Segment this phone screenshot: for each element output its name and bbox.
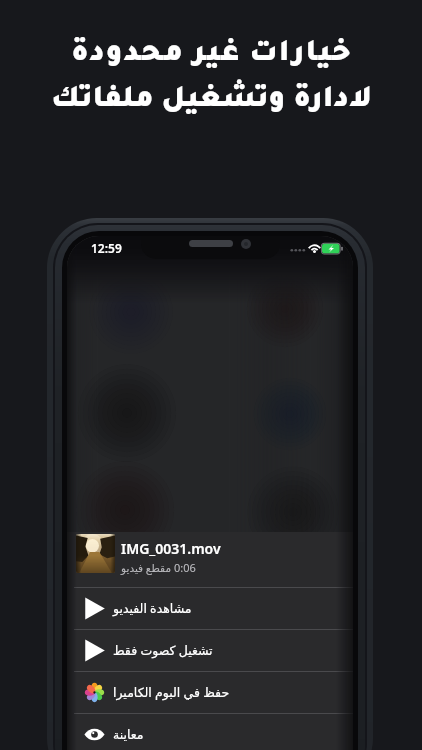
staticText: مقطع فيديو bbox=[121, 561, 171, 575]
staticText: 12:59 bbox=[91, 240, 122, 256]
staticText: تشغيل كصوت فقط bbox=[113, 642, 213, 659]
button[interactable]: Watch video bbox=[67, 588, 353, 629]
button[interactable]: Save to camera roll bbox=[67, 672, 353, 713]
button[interactable]: Preview bbox=[67, 714, 353, 750]
staticText: معاينة bbox=[113, 727, 144, 742]
staticText: حفظ في البوم الكاميرا bbox=[113, 684, 230, 701]
staticText: IMG_0031.mov bbox=[121, 539, 221, 558]
button[interactable]: IMG_0031.mov bbox=[67, 532, 353, 587]
staticText: 0:06 bbox=[174, 560, 196, 575]
staticText: لادارة وتشغيل ملفاتك bbox=[51, 86, 372, 117]
staticText: مشاهدة الفيديو bbox=[113, 600, 192, 617]
button[interactable]: Play audio only bbox=[67, 630, 353, 671]
staticText: خيارات غير محدودة bbox=[71, 40, 352, 71]
